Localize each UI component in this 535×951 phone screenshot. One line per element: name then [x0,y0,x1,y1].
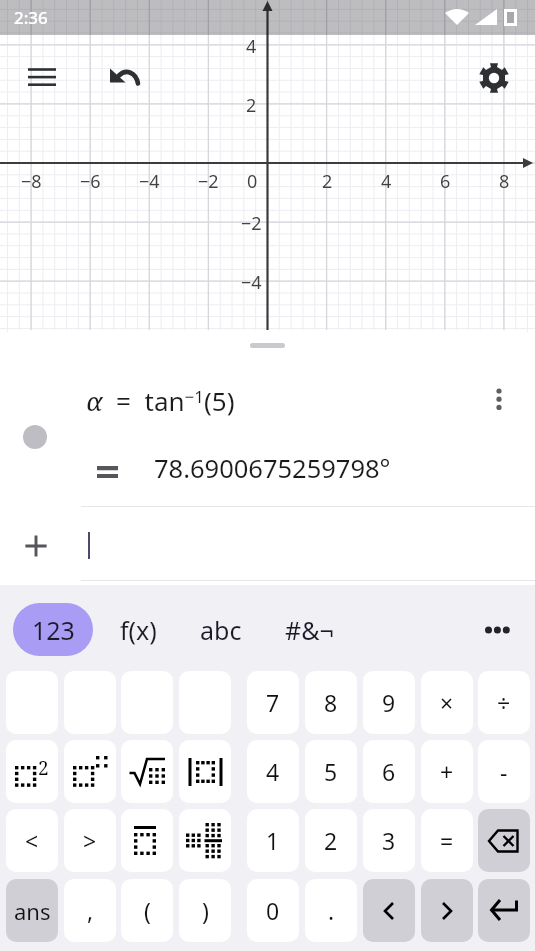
button[interactable]: frac [179,809,231,872]
button[interactable]: + [421,740,473,803]
button[interactable]: More options [479,378,519,418]
button[interactable]: vec [121,809,173,872]
button[interactable]: 1 [247,809,299,872]
staticText: 2 [246,93,257,115]
button[interactable]: ans [6,879,58,942]
button[interactable]: . [305,879,357,942]
button[interactable]: 123 [13,603,93,656]
button[interactable]: - [478,740,530,803]
staticText: ( [144,895,151,926]
staticText: 3 [382,825,396,856]
button[interactable]: left [363,879,415,942]
button[interactable]: Object colour [23,425,47,449]
staticText: 0 [247,169,258,191]
button[interactable]: sqrt [121,740,173,803]
staticText: 8 [324,687,338,718]
staticText: ) [202,895,209,926]
staticText: ÷ [497,687,511,718]
staticText: 78.6900675259798° [154,451,391,486]
button[interactable]: Menu [20,55,64,99]
button[interactable]: 7 [247,671,299,734]
staticText: α = tan−1(5) [86,383,235,418]
button[interactable]: = [421,809,473,872]
button[interactable]: enter [478,879,530,942]
button[interactable]: 4 [247,740,299,803]
staticText: , [87,895,94,926]
staticText: ans [14,896,51,926]
staticText: −2 [198,169,219,191]
staticText: #&¬ [285,613,334,647]
button[interactable]: 6 [363,740,415,803]
button[interactable]: × [421,671,473,734]
staticText: −6 [80,169,101,191]
staticText: × [440,687,454,718]
button[interactable]: right [421,879,473,942]
staticText: 2 [324,825,338,856]
staticText: - [500,756,508,787]
button[interactable]: > [64,809,116,872]
staticText: 2 [38,755,49,781]
staticText: 2 [322,169,333,191]
staticText: < [25,825,39,856]
button[interactable]: More [471,604,527,654]
button[interactable]: ) [179,879,231,942]
staticText: −4 [241,270,262,292]
staticText: 4 [246,34,257,56]
staticText: −8 [21,169,42,191]
staticText: 1 [266,825,280,856]
button[interactable]: abc [178,603,264,656]
button[interactable]: 0 [247,879,299,942]
staticText: + [440,756,454,787]
staticText: 9 [382,687,396,718]
staticText: 7 [266,687,280,718]
staticText: 0 [266,895,280,926]
staticText: 5 [324,756,338,787]
button[interactable]: 3 [363,809,415,872]
button[interactable]: pow [64,740,116,803]
button[interactable]: sq [6,740,58,803]
staticText: = [440,825,454,856]
button[interactable]: Undo [102,54,146,98]
button[interactable]: ÷ [478,671,530,734]
staticText: 123 [32,613,75,647]
button[interactable]: #&¬ [266,603,352,656]
staticText: 6 [440,169,451,191]
staticText: abc [200,613,242,647]
staticText: 2:36 [14,6,48,29]
staticText: 4 [266,756,280,787]
staticText: 8 [499,169,510,191]
button[interactable]: ( [121,879,173,942]
staticText: −2 [241,211,262,233]
staticText: 6 [382,756,396,787]
button[interactable]: 9 [363,671,415,734]
button[interactable]: Add expression [15,525,56,566]
staticText: −4 [139,169,160,191]
button[interactable]: Settings [471,55,516,100]
button[interactable]: 2 [305,809,357,872]
staticText: 4 [381,169,392,191]
button[interactable]: 8 [305,671,357,734]
button[interactable]: < [6,809,58,872]
button[interactable]: , [64,879,116,942]
staticText: f(x) [120,613,157,647]
button[interactable]: bksp [478,809,530,872]
button[interactable]: abs [179,740,231,803]
staticText: . [328,895,335,926]
button[interactable]: 5 [305,740,357,803]
button[interactable]: f(x) [95,603,181,656]
staticText: > [83,825,97,856]
